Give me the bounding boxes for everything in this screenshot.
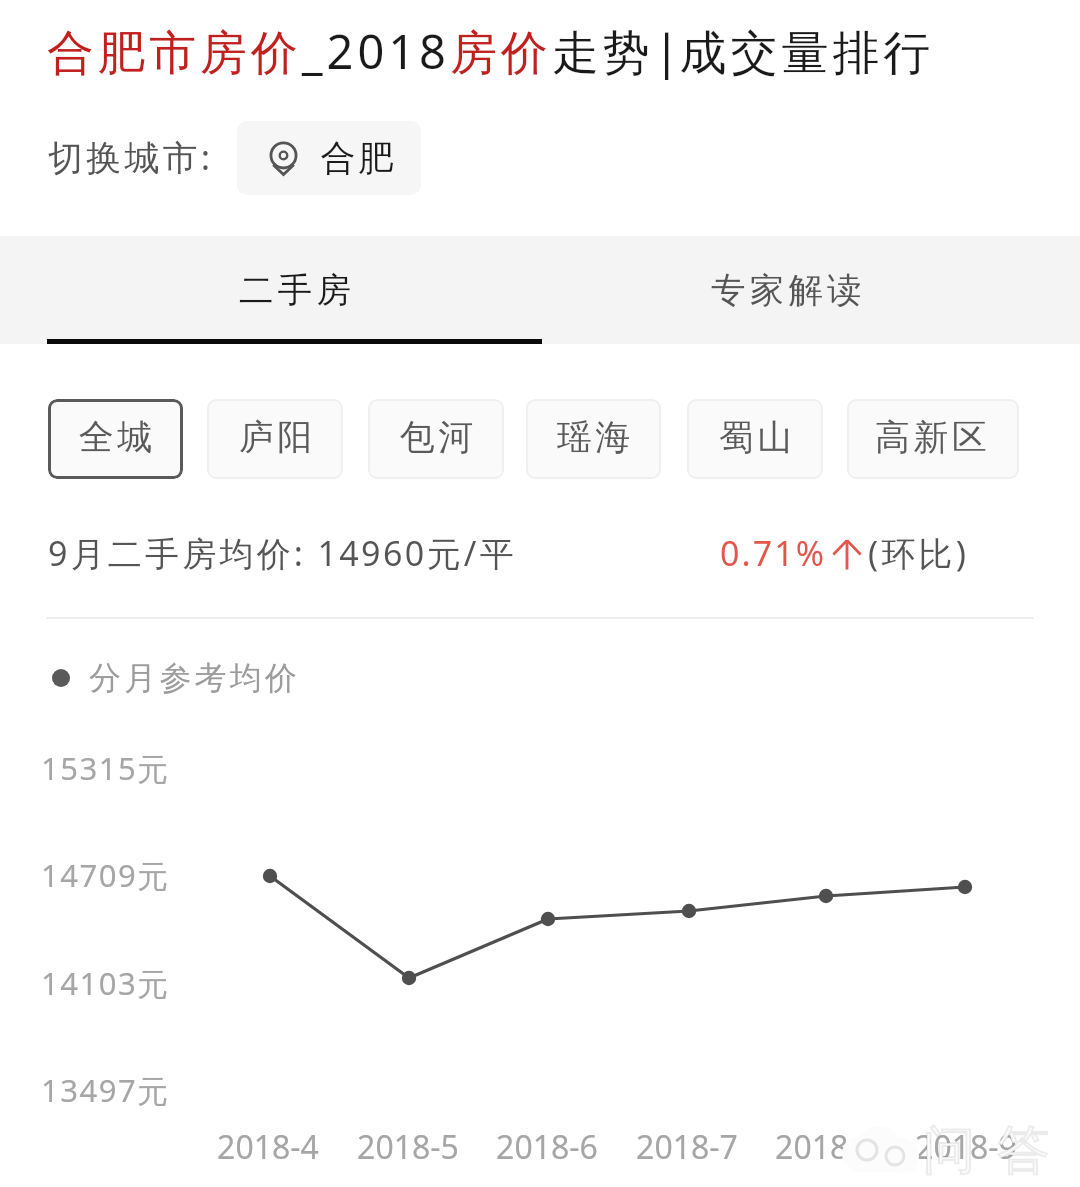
staticText: 2018-4 (199, 1125, 337, 1169)
staticText: 二手房 (239, 269, 356, 312)
staticText: 14103元 (41, 962, 170, 1004)
staticText: 13497元 (41, 1069, 170, 1111)
button[interactable]: Change city (237, 121, 421, 195)
staticText: 9月二手房均价: 14960元/平 (48, 530, 517, 576)
staticText: 问答 (912, 1118, 1060, 1184)
button[interactable]: 庐阳 (207, 399, 343, 479)
staticText: 0.71% (720, 530, 827, 576)
staticText: 蜀山 (717, 415, 794, 459)
staticText: 2018-5 (339, 1125, 477, 1169)
button[interactable]: 全城 (48, 399, 183, 479)
staticText: 2018-8 (757, 1125, 895, 1169)
staticText: 分月参考均价 (89, 658, 301, 698)
staticText: 合肥 (319, 136, 395, 180)
button[interactable]: 包河 (368, 399, 504, 479)
staticText: 全城 (77, 415, 154, 459)
staticText: 2018-9 (897, 1125, 1035, 1169)
staticText: 合肥市房价_2018房价走势|成交量排行 (47, 19, 935, 83)
staticText: 2018-7 (618, 1125, 756, 1169)
other: Change city (268, 140, 299, 176)
staticText: 2018-6 (478, 1125, 616, 1169)
staticText: 切换城市: (48, 133, 214, 181)
staticText: 庐阳 (237, 415, 314, 459)
button[interactable]: 专家解读 (541, 236, 1036, 344)
staticText: 高新区 (875, 415, 991, 459)
button[interactable]: 瑶海 (526, 399, 661, 479)
button[interactable]: 高新区 (847, 399, 1019, 479)
staticText: 专家解读 (711, 269, 866, 312)
staticText: 问答 (912, 1118, 1060, 1184)
staticText: 14709元 (41, 854, 170, 896)
staticText: (环比) (868, 530, 970, 576)
staticText: 包河 (398, 415, 475, 459)
staticText: 15315元 (41, 747, 170, 789)
staticText: 瑶海 (555, 415, 632, 459)
button[interactable]: 二手房 (50, 236, 545, 344)
button[interactable]: 蜀山 (687, 399, 823, 479)
